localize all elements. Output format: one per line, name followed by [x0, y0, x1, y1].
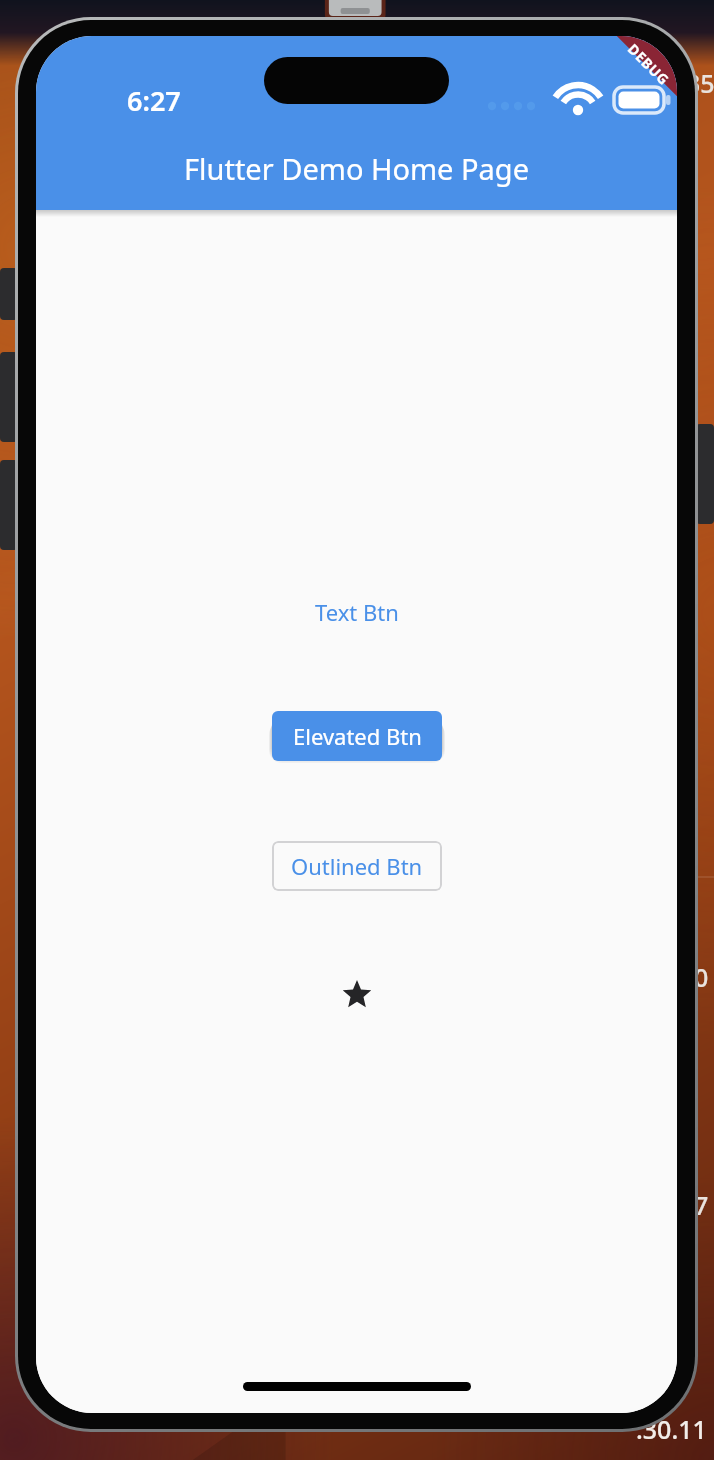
- button[interactable]: Favorite: [330, 967, 384, 1021]
- staticText: 0: [694, 960, 709, 994]
- staticText: 35: [686, 66, 714, 100]
- staticText: 7: [694, 1188, 709, 1222]
- staticText: Flutter Demo Home Page: [36, 149, 677, 188]
- staticText: Outlined Btn: [291, 851, 423, 881]
- staticText: .30.11: [636, 1412, 707, 1446]
- button[interactable]: Outlined Btn: [272, 841, 442, 891]
- staticText: Elevated Btn: [293, 721, 422, 751]
- staticText: DEBUG: [624, 39, 674, 90]
- button[interactable]: Elevated Btn: [272, 711, 442, 761]
- staticText: Text Btn: [315, 597, 399, 627]
- button[interactable]: Text Btn: [299, 586, 415, 638]
- staticText: 6:27: [127, 82, 181, 119]
